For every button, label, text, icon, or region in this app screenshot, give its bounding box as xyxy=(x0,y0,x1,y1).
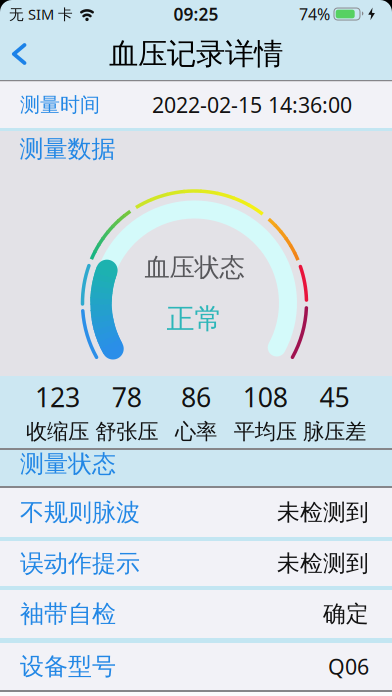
staticText: 测量时间 xyxy=(20,92,100,117)
staticText: 74% xyxy=(299,3,330,25)
staticText: 未检测到 xyxy=(277,499,369,526)
staticText: 设备型号 xyxy=(20,652,116,681)
staticText: Q06 xyxy=(328,652,369,681)
button[interactable]: Back xyxy=(0,40,28,67)
staticText: 测量数据 xyxy=(19,134,115,164)
staticText: 测量状态 xyxy=(20,449,116,479)
staticText: 45 xyxy=(319,379,349,415)
staticText: 78 xyxy=(112,379,142,415)
staticText: 不规则脉波 xyxy=(20,498,140,527)
staticText: 108 xyxy=(243,379,288,415)
staticText: 确定 xyxy=(323,600,369,628)
staticText: 正常 xyxy=(166,302,222,336)
staticText: 无 SIM 卡 xyxy=(9,4,73,24)
staticText: 平均压 xyxy=(234,419,297,445)
staticText: 袖带自检 xyxy=(20,599,116,629)
staticText: 血压状态 xyxy=(144,252,244,283)
staticText: 舒张压 xyxy=(95,419,158,445)
staticText: 未检测到 xyxy=(277,550,369,577)
staticText: 心率 xyxy=(175,419,217,445)
staticText: 2022-02-15 14:36:00 xyxy=(152,91,352,119)
staticText: 123 xyxy=(35,379,80,415)
staticText: 86 xyxy=(181,379,211,415)
staticText: 收缩压 xyxy=(26,419,89,445)
staticText: 脉压差 xyxy=(303,419,366,445)
staticText: 误动作提示 xyxy=(20,549,140,578)
staticText: 09:25 xyxy=(173,2,218,25)
staticText: 血压记录详情 xyxy=(109,36,283,72)
